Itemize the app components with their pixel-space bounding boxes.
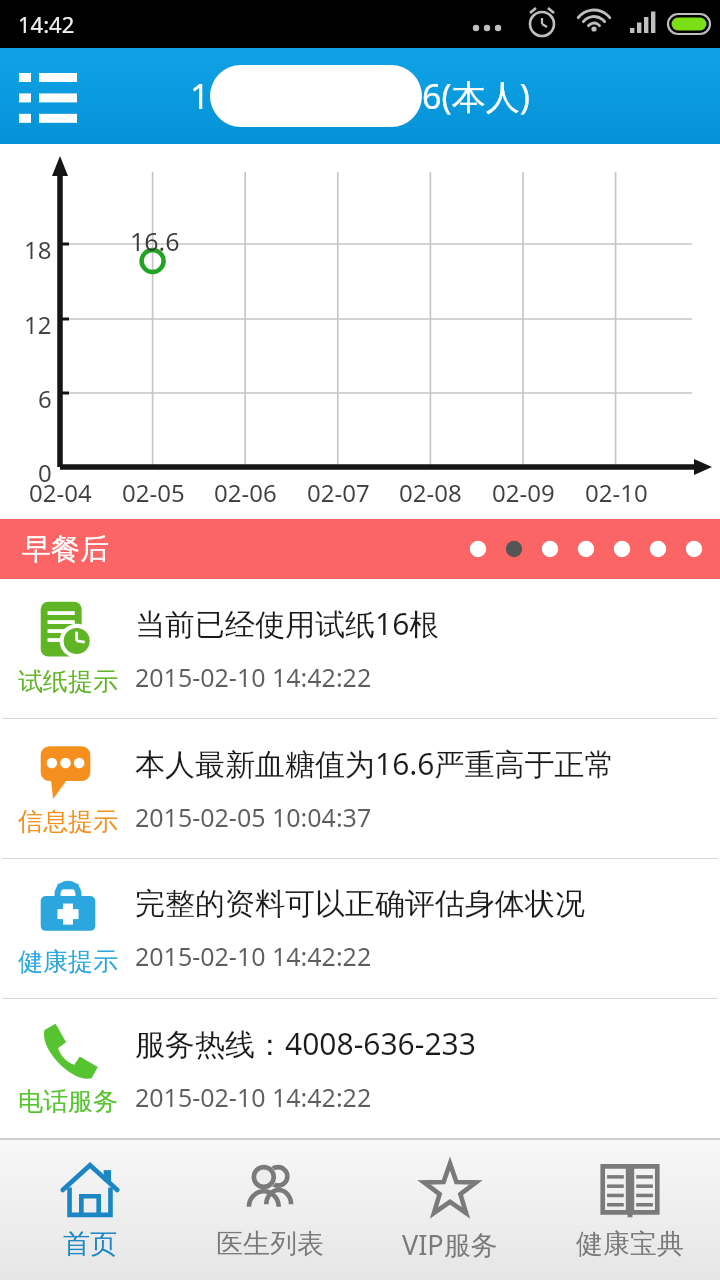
staticText: 02-04 [29,476,92,509]
staticText: 02-07 [307,476,370,509]
button[interactable]: Menu [8,56,88,136]
staticText: VIP服务 [402,1226,498,1263]
staticText: 服务热线：4008-636-233 [135,1023,476,1064]
staticText: 健康宝典 [576,1227,684,1261]
staticText: 02-08 [399,476,462,509]
button[interactable]: VIP服务 [360,1140,540,1280]
button[interactable]: 首页 [0,1140,180,1280]
staticText: 2015-02-05 10:04:37 [135,800,372,834]
staticText: 信息提示 [18,806,118,837]
staticText: 18 [24,233,52,266]
staticText: 首页 [63,1227,117,1261]
staticText: 0 [38,456,52,489]
staticText: 2015-02-10 14:42:22 [135,1080,372,1114]
staticText: 02-05 [122,476,185,509]
staticText: 本人最新血糖值为16.6严重高于正常 [135,743,615,784]
staticText: 12 [24,308,52,341]
button[interactable]: 早餐后 [0,519,720,579]
staticText: 当前已经使用试纸16根 [135,603,440,644]
staticText: 早餐后 [22,531,109,568]
staticText: 6 [38,382,52,415]
staticText: 14:42 [18,9,75,39]
button[interactable]: 健康提示 [0,859,720,998]
button[interactable]: 医生列表 [180,1140,360,1280]
staticText: 02-09 [492,476,555,509]
staticText: 6(本人) [422,73,530,119]
staticText: 试纸提示 [18,666,118,697]
staticText: 2015-02-10 14:42:22 [135,660,372,694]
button[interactable]: 试纸提示 [0,579,720,718]
staticText: 02-06 [214,476,277,509]
staticText: 02-10 [585,476,648,509]
staticText: 16.6 [130,224,180,258]
staticText: 2015-02-10 14:42:22 [135,939,372,973]
button[interactable]: 电话服务 [0,999,720,1138]
button[interactable]: 健康宝典 [540,1140,720,1280]
staticText: 健康提示 [18,946,118,977]
staticText: 医生列表 [216,1227,324,1261]
staticText: 1 [190,73,210,119]
staticText: 完整的资料可以正确评估身体状况 [135,885,585,923]
button[interactable]: 信息提示 [0,719,720,858]
staticText: 电话服务 [18,1086,118,1117]
